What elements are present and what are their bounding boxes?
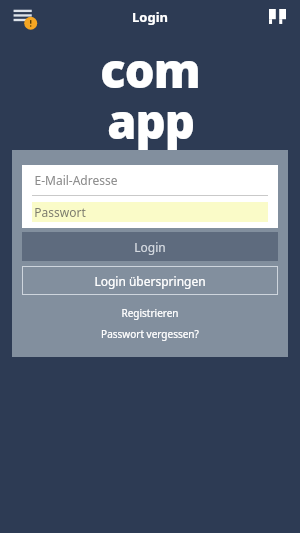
staticText: app [107,89,194,153]
staticText: Login überspringen [94,273,206,289]
button[interactable]: E-Mail-Adresse [22,165,278,195]
button[interactable]: Login überspringen [22,266,278,295]
staticText: Passwort [34,204,86,220]
button[interactable]: Login [22,232,278,261]
staticText: com [100,38,200,102]
button[interactable]: Menu [8,0,42,34]
staticText: Registrieren [121,306,179,320]
staticText: E-Mail-Adresse [34,172,118,188]
staticText: Login [132,8,168,26]
button[interactable]: Registrieren [22,304,278,321]
button[interactable]: Passwort vergessen? [22,325,278,342]
button[interactable]: Passwort [22,196,278,228]
button[interactable]: Quotes [262,2,292,32]
staticText: Passwort vergessen? [101,327,199,341]
staticText: Login [134,239,166,255]
